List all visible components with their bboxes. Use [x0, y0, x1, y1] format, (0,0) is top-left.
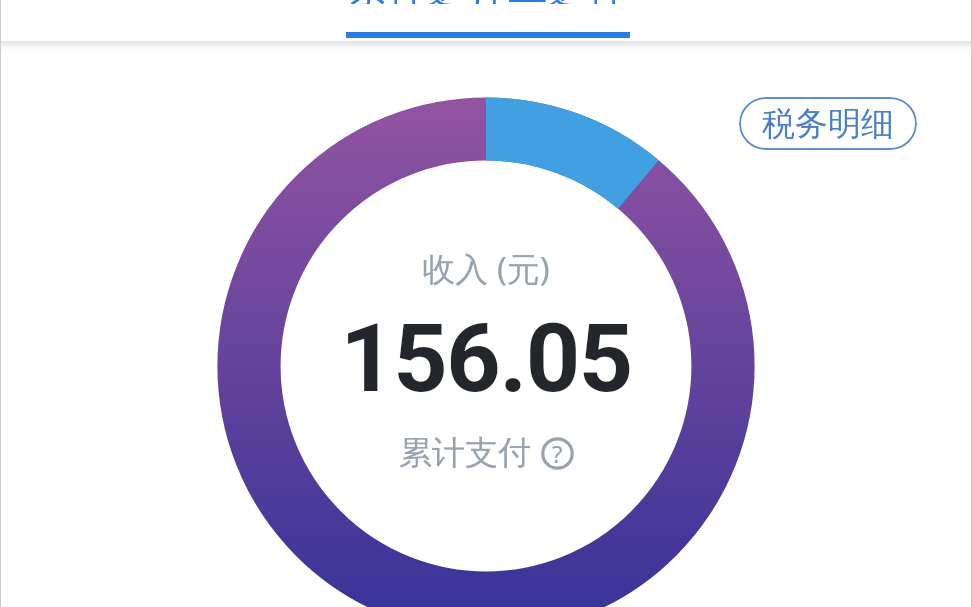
staticText: 累计支付: [399, 432, 531, 474]
button[interactable]: 税务明细: [739, 97, 917, 150]
staticText: 条件选择二选件: [348, 0, 628, 4]
staticText: ?: [552, 437, 563, 470]
staticText: 收入 (元): [422, 246, 550, 291]
button[interactable]: Help, what is 累计支付: [541, 437, 574, 470]
staticText: 156.05: [340, 303, 632, 414]
button[interactable]: 条件选择二选件: [346, 0, 630, 41]
staticText: 税务明细: [762, 103, 894, 145]
